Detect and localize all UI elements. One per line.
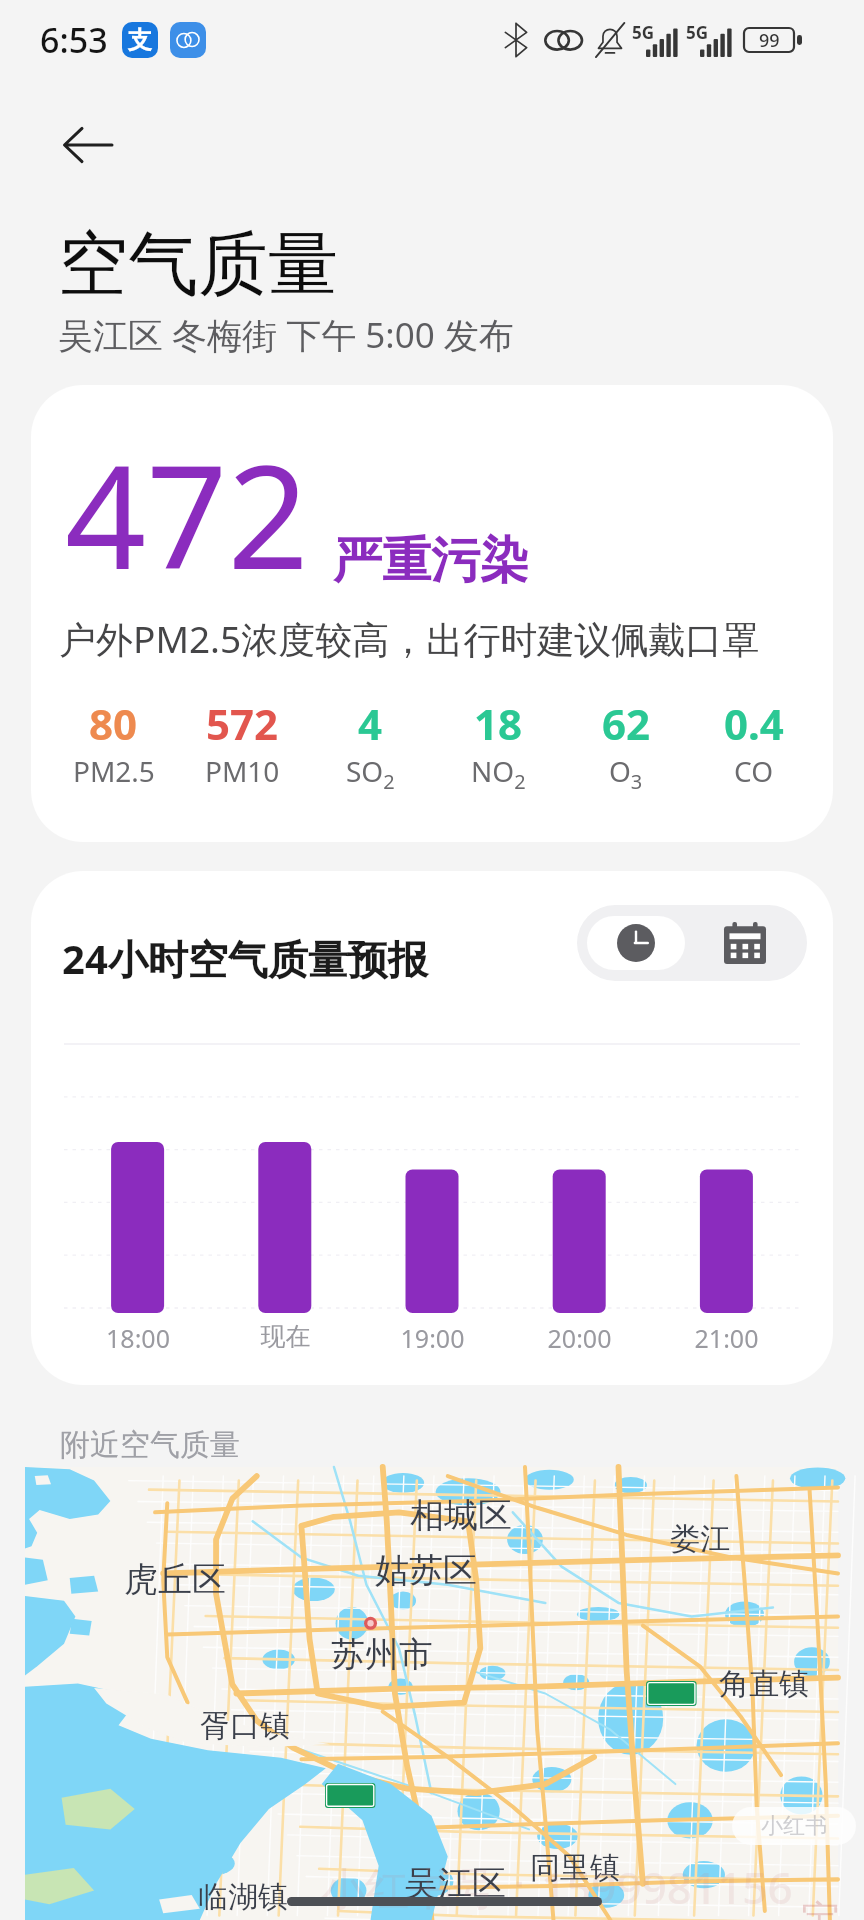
staticText: 0.4 <box>724 695 784 752</box>
staticText: CO <box>734 752 774 790</box>
staticText: 24小时空气质量预报 <box>62 931 428 986</box>
button[interactable]: Hourly forecast <box>587 916 685 970</box>
staticText: 空气质量 <box>58 221 338 309</box>
staticText: 5G <box>686 21 709 44</box>
staticText: PM2.5 <box>73 752 155 790</box>
staticText: 5G <box>632 21 655 44</box>
staticText: 严重污染 <box>333 530 529 592</box>
staticText: 6:53 <box>40 17 108 63</box>
staticText: 虎丘区 <box>124 1558 226 1601</box>
staticText: 角直镇 <box>719 1665 809 1703</box>
staticText: 姑苏区 <box>375 1549 477 1592</box>
staticText: 99 <box>759 28 780 52</box>
staticText: 小红书 <box>761 1812 827 1840</box>
staticText: NO2 <box>471 752 526 795</box>
button[interactable]: Daily forecast <box>693 913 797 973</box>
staticText: 62 <box>602 695 651 752</box>
staticText: 苏州市 <box>331 1633 433 1676</box>
staticText: 支 <box>128 25 152 55</box>
staticText: 20:00 <box>506 1321 653 1355</box>
staticText: 19:00 <box>359 1321 506 1355</box>
staticText: SO2 <box>346 752 395 795</box>
staticText: 相城区 <box>410 1494 512 1537</box>
staticText: 4 <box>358 695 383 752</box>
staticText: 18:00 <box>64 1321 212 1355</box>
staticText: 吴江区 <box>404 1862 506 1905</box>
staticText: 小红书号：1599981156 <box>321 1857 793 1917</box>
staticText: 现在 <box>212 1321 359 1352</box>
button[interactable]: 472 <box>31 385 833 842</box>
staticText: 宝 <box>801 1895 841 1920</box>
staticText: 21:00 <box>653 1321 800 1355</box>
staticText: 临湖镇 <box>198 1878 288 1916</box>
staticText: 吴江区 冬梅街 下午 5:00 发布 <box>58 311 514 359</box>
staticText: 户外PM2.5浓度较高，出行时建议佩戴口罩 <box>59 613 760 664</box>
staticText: 附近空气质量 <box>60 1426 240 1464</box>
staticText: 18 <box>474 695 523 752</box>
staticText: PM10 <box>205 752 280 790</box>
button[interactable]: Back <box>60 117 116 173</box>
staticText: 胥口镇 <box>200 1707 290 1745</box>
staticText: O3 <box>609 752 643 795</box>
staticText: 572 <box>206 695 279 752</box>
staticText: 同里镇 <box>530 1849 620 1887</box>
staticText: 娄江 <box>670 1520 730 1558</box>
staticText: 472 <box>65 417 309 610</box>
staticText: 80 <box>89 695 138 752</box>
